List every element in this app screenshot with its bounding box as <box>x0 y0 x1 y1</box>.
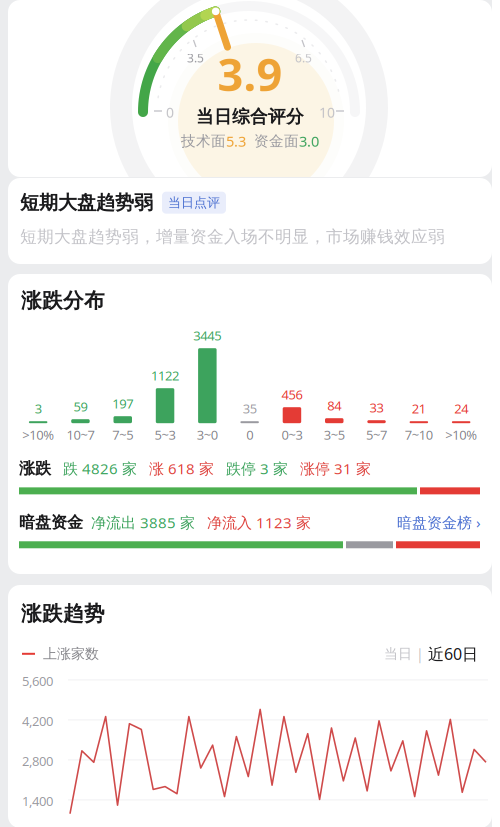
staticText: 3~0 <box>197 426 218 443</box>
staticText: 59 <box>73 398 87 415</box>
staticText: 短期大盘趋势弱 <box>20 191 153 214</box>
staticText: 上涨家数 <box>35 645 99 662</box>
staticText: 技术面 <box>181 132 226 150</box>
staticText: 33 <box>370 399 384 416</box>
staticText: 10~7 <box>66 426 94 443</box>
staticText: 净流出 3885 家 <box>83 512 195 532</box>
staticText: 涨 618 家 <box>137 458 214 478</box>
staticText: 24 <box>454 400 468 417</box>
staticText: 5~3 <box>154 426 175 443</box>
staticText: 净流入 1123 家 <box>195 512 311 532</box>
button[interactable]: 当日 <box>384 645 412 662</box>
staticText: 当日综合评分 <box>196 106 304 127</box>
staticText: 暗盘资金榜 › <box>397 512 481 532</box>
staticText: 3~5 <box>324 426 345 443</box>
staticText: 1,400 <box>22 792 53 810</box>
staticText: >10% <box>22 426 54 443</box>
button[interactable]: 当日点评 <box>162 192 226 214</box>
staticText: 3.0 <box>299 131 319 151</box>
staticText: 3 <box>35 400 42 417</box>
staticText: | <box>412 644 428 663</box>
staticText: 短期大盘趋势弱，增量资金入场不明显，市场赚钱效应弱 <box>20 226 445 247</box>
staticText: 35 <box>243 400 257 417</box>
staticText: 456 <box>281 386 302 403</box>
staticText: 7~10 <box>405 426 433 443</box>
staticText: 197 <box>112 395 133 412</box>
staticText: 0 <box>246 426 253 443</box>
button[interactable]: 近60日 <box>428 643 478 664</box>
staticText: 1122 <box>151 367 179 384</box>
staticText: 涨停 31 家 <box>288 458 371 478</box>
staticText: 10 <box>319 103 335 122</box>
staticText: 涨跌分布 <box>21 288 105 313</box>
staticText: 4,200 <box>22 712 53 730</box>
staticText: 跌停 3 家 <box>214 458 288 478</box>
button[interactable]: 暗盘资金榜 › <box>397 512 481 532</box>
staticText: 6.5 <box>295 50 312 66</box>
staticText: 7~5 <box>112 426 133 443</box>
staticText: 3.9 <box>217 44 282 104</box>
staticText: 5,600 <box>22 672 53 690</box>
staticText: 21 <box>412 400 426 417</box>
staticText: 暗盘资金 <box>19 512 83 532</box>
staticText: 跌 4826 家 <box>51 458 137 478</box>
staticText: 3.5 <box>187 50 204 66</box>
staticText: 近60日 <box>428 643 478 664</box>
staticText: 0~3 <box>281 426 302 443</box>
staticText: 涨跌趋势 <box>21 601 105 626</box>
staticText: 5.3 <box>226 131 246 151</box>
staticText: 3445 <box>193 327 221 344</box>
staticText: 0 <box>166 103 174 122</box>
staticText: 当日点评 <box>168 195 220 211</box>
staticText: 当日 <box>384 645 412 662</box>
staticText: 资金面 <box>254 132 299 150</box>
staticText: 84 <box>327 397 341 414</box>
staticText: >10% <box>445 426 477 443</box>
staticText: 5~7 <box>366 426 387 443</box>
staticText: 2,800 <box>22 752 53 770</box>
staticText: 涨跌 <box>19 459 51 478</box>
